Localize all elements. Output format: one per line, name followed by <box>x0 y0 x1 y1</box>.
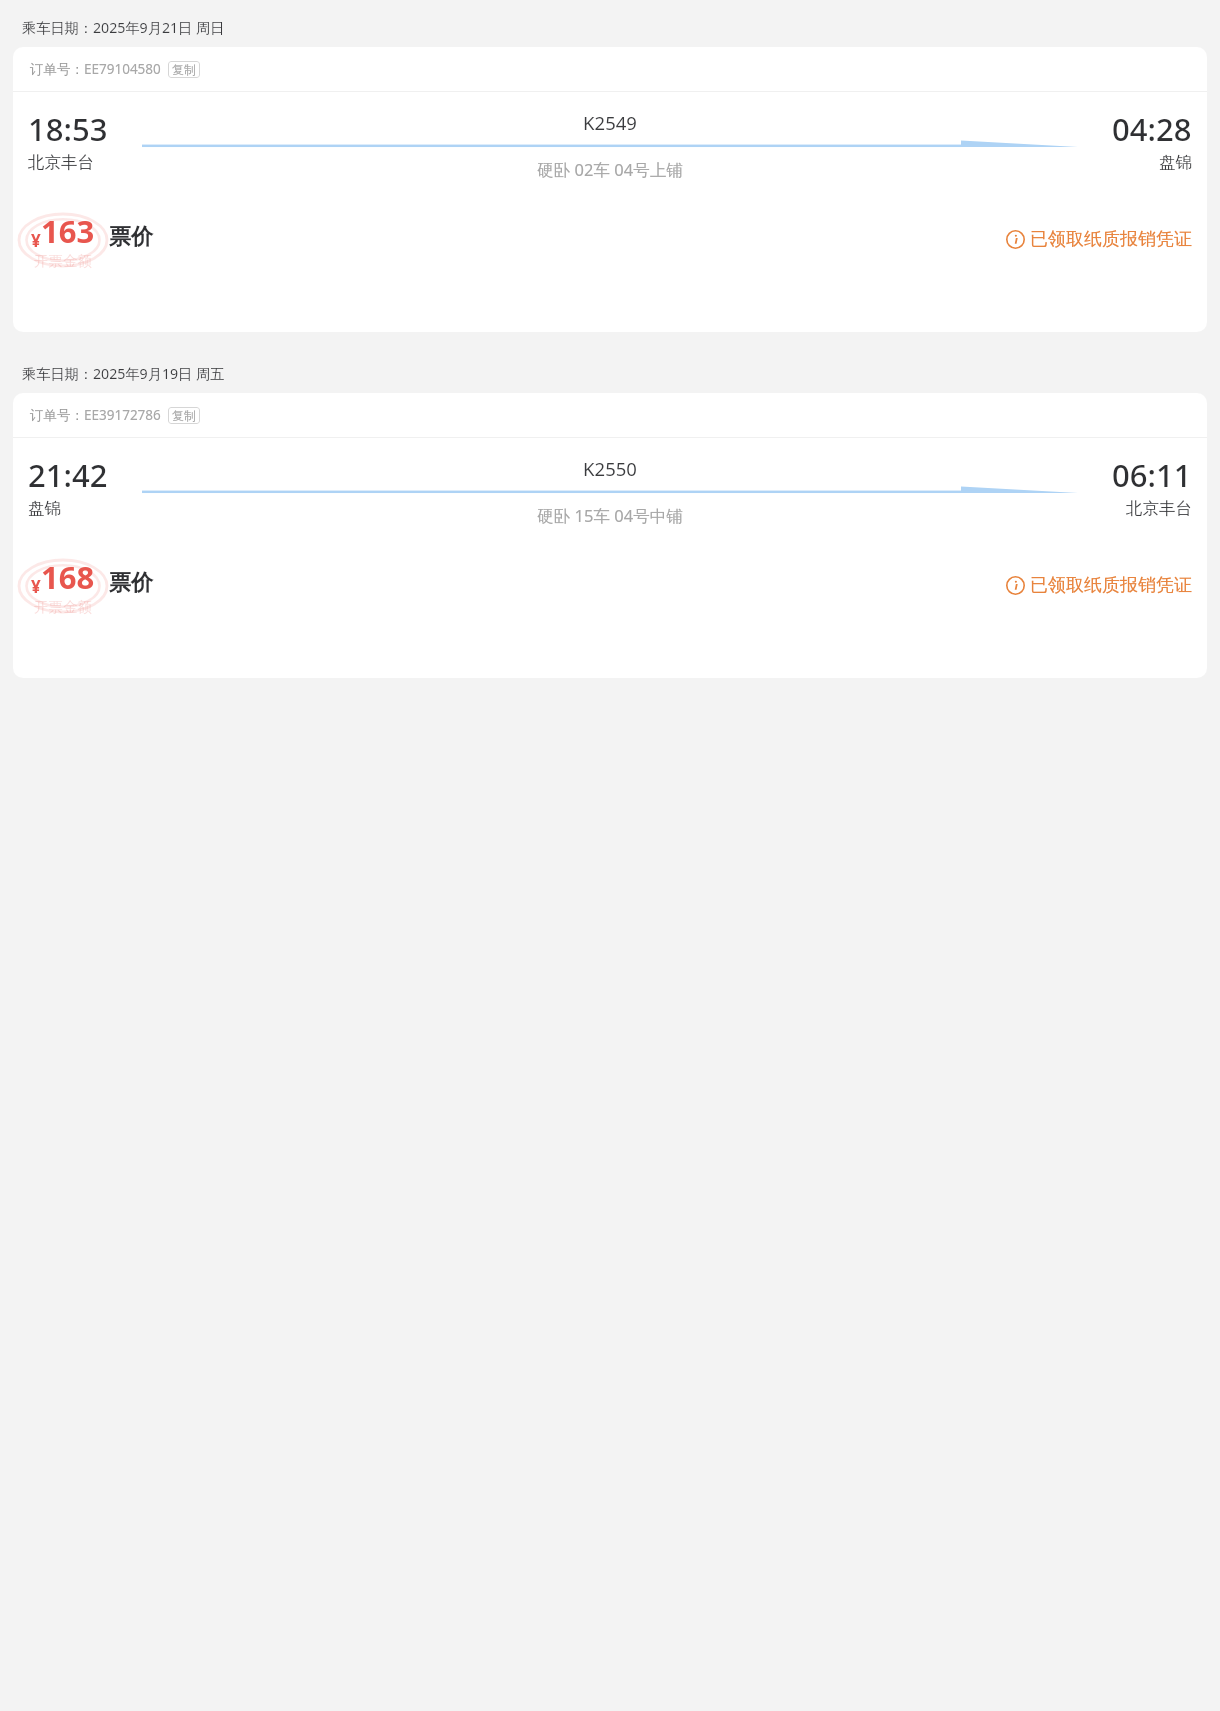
button[interactable]: 已领取纸质报销凭证 <box>1006 574 1192 597</box>
staticText: 盘锦 <box>28 498 61 519</box>
staticText: 票价 <box>109 569 153 597</box>
staticText: 开票金额 <box>34 252 92 270</box>
staticText: 163 <box>41 210 95 252</box>
staticText: 北京丰台 <box>28 152 94 173</box>
staticText: 复制 <box>172 62 196 77</box>
staticText: 已领取纸质报销凭证 <box>1030 228 1192 251</box>
staticText: K2549 <box>583 110 637 135</box>
staticText: 18:53 <box>28 108 108 150</box>
button[interactable]: 复制 <box>168 407 200 424</box>
staticText: 票价 <box>109 223 153 251</box>
staticText: K2550 <box>583 456 637 481</box>
staticText: 北京丰台 <box>1126 498 1192 519</box>
staticText: 已领取纸质报销凭证 <box>1030 574 1192 597</box>
staticText: 硬卧 02车 04号上铺 <box>537 158 683 181</box>
button[interactable]: 已领取纸质报销凭证 <box>1006 228 1192 251</box>
staticText: 订单号： <box>30 407 84 424</box>
staticText: EE39172786 <box>84 406 161 424</box>
staticText: 乘车日期：2025年9月19日 周五 <box>22 364 225 383</box>
staticText: EE79104580 <box>84 60 161 78</box>
staticText: 21:42 <box>28 454 108 496</box>
staticText: 168 <box>41 556 95 598</box>
staticText: 订单号： <box>30 61 84 78</box>
button[interactable]: 复制 <box>168 61 200 78</box>
button[interactable]: 订单号： <box>13 393 1207 678</box>
staticText: 乘车日期：2025年9月21日 周日 <box>22 18 225 37</box>
button[interactable]: 订单号： <box>13 47 1207 332</box>
staticText: ¥ <box>31 575 41 598</box>
staticText: 06:11 <box>1112 454 1192 496</box>
staticText: 04:28 <box>1112 108 1192 150</box>
staticText: ¥ <box>31 229 41 252</box>
staticText: 硬卧 15车 04号中铺 <box>537 504 683 527</box>
staticText: 盘锦 <box>1159 152 1192 173</box>
staticText: 复制 <box>172 408 196 423</box>
staticText: 开票金额 <box>34 598 92 616</box>
